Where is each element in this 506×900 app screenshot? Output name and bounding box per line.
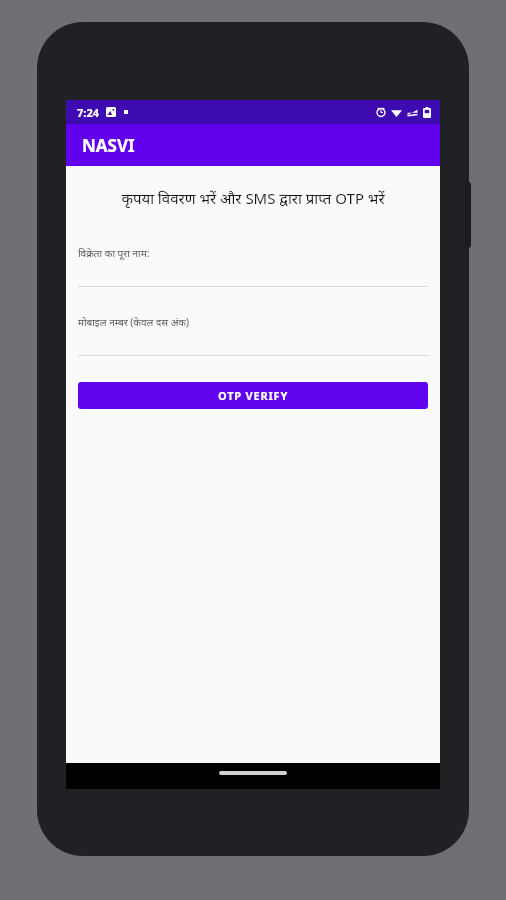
staticText: 7:24 bbox=[77, 105, 99, 120]
staticText: NASVI bbox=[82, 134, 135, 157]
staticText: मोबाइल नम्बर (केवल दस अंक) bbox=[78, 315, 189, 329]
button[interactable]: मोबाइल नम्बर (केवल दस अंक) bbox=[78, 315, 428, 356]
staticText: कृपया विवरण भरें और SMS द्वारा प्राप्त O… bbox=[121, 188, 385, 208]
button[interactable]: OTP VERIFY bbox=[78, 382, 428, 409]
staticText: OTP VERIFY bbox=[218, 388, 289, 403]
button[interactable]: विक्रेता का पूरा नाम: bbox=[78, 246, 428, 287]
staticText: विक्रेता का पूरा नाम: bbox=[78, 246, 150, 260]
